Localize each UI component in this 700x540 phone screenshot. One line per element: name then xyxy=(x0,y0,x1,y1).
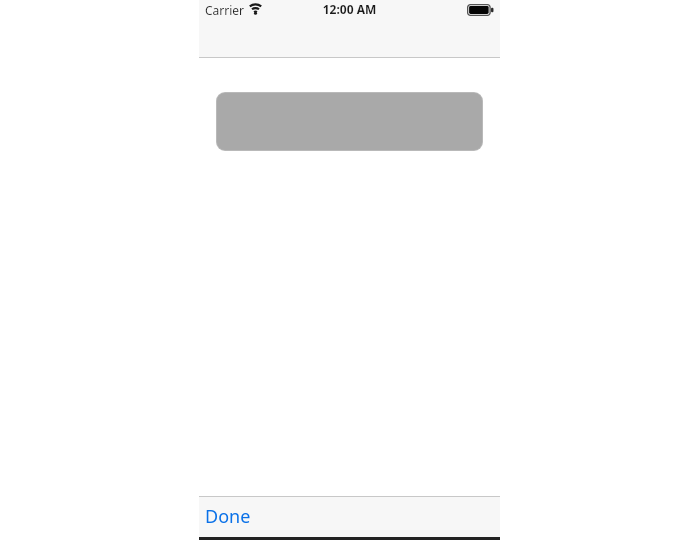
staticText: Carrier xyxy=(205,2,245,18)
button[interactable]: Done xyxy=(205,498,251,535)
button[interactable] xyxy=(217,93,482,150)
staticText: 12:00 AM xyxy=(199,1,500,17)
other: Battery full xyxy=(467,4,494,16)
staticText: Done xyxy=(205,504,251,529)
other: Wi-Fi signal xyxy=(249,3,262,14)
